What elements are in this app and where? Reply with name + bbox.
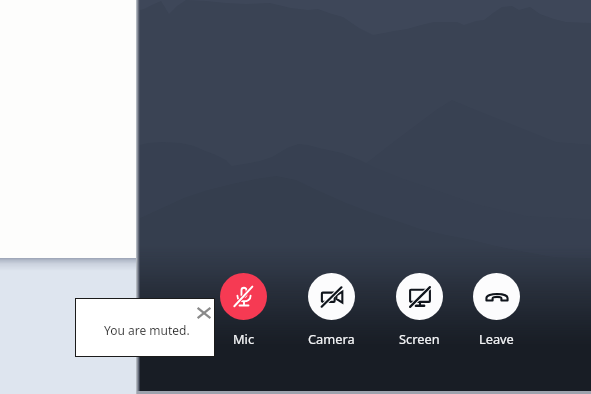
- button[interactable]: Mic: [215, 270, 271, 348]
- button[interactable]: Leave: [468, 270, 524, 348]
- staticText: Leave: [479, 330, 514, 347]
- staticText: You are muted.: [104, 322, 190, 338]
- button[interactable]: Screen: [391, 270, 447, 348]
- staticText: Mic: [233, 330, 255, 347]
- staticText: Camera: [308, 330, 355, 347]
- staticText: Screen: [399, 330, 440, 347]
- button[interactable]: Camera: [303, 270, 359, 348]
- button[interactable]: Close: [193, 302, 215, 324]
